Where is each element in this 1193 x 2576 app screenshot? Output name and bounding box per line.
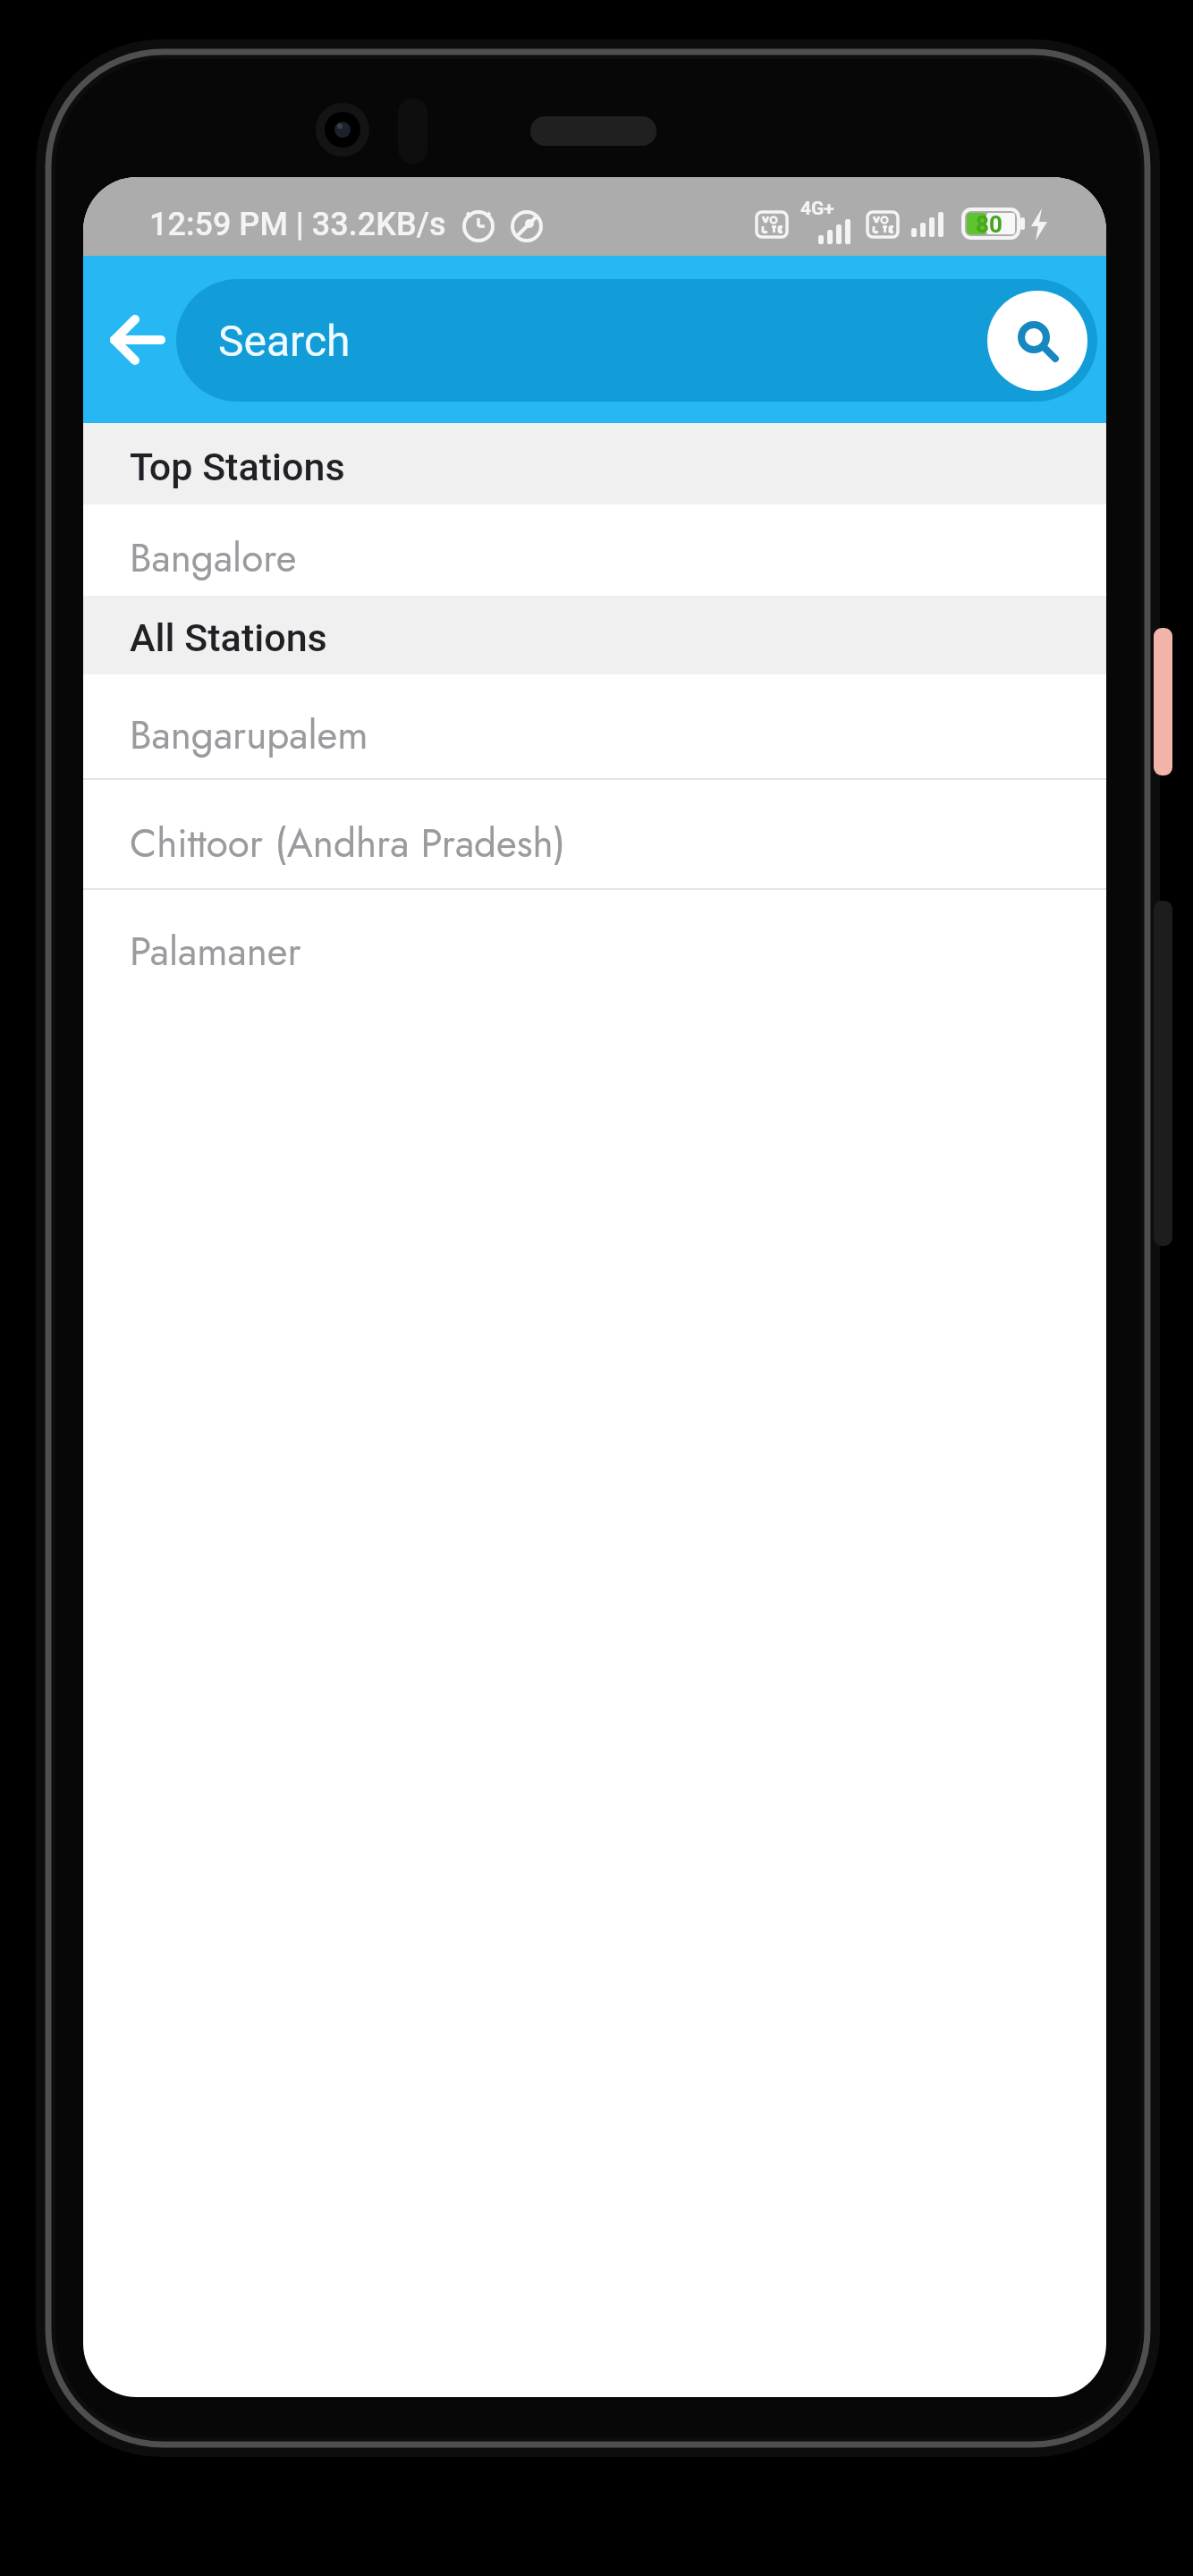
staticText: Search (218, 316, 351, 366)
staticText: 4G+ (800, 198, 834, 220)
button[interactable]: Bangarupalem (83, 674, 1106, 780)
staticText: Bangalore (130, 530, 297, 587)
button[interactable]: Chittoor (Andhra Pradesh) (83, 780, 1106, 890)
staticText: Bangarupalem (130, 707, 368, 764)
button[interactable]: Palamaner (83, 890, 1106, 997)
button[interactable]: Bangalore (83, 504, 1106, 596)
button[interactable] (93, 295, 182, 385)
button[interactable] (987, 291, 1087, 391)
staticText: All Stations (130, 615, 327, 660)
staticText: Palamaner (130, 923, 301, 980)
button[interactable]: Search (176, 279, 1097, 402)
staticText: 12:59 PM | 33.2KB/s (149, 206, 446, 243)
staticText: 80 (976, 211, 1003, 238)
staticText: Top Stations (130, 445, 345, 489)
staticText: Chittoor (Andhra Pradesh) (130, 815, 566, 872)
